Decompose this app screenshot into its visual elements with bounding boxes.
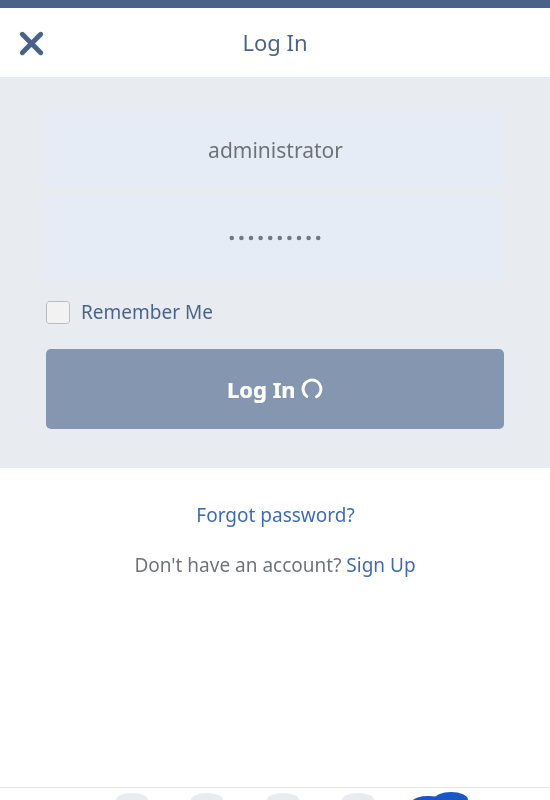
button[interactable] (46, 195, 504, 281)
staticText: Don't have an account? Sign Up (134, 552, 416, 578)
staticText: Remember Me (81, 299, 213, 325)
button[interactable]: Close (10, 22, 52, 64)
button[interactable]: administrator (46, 112, 504, 188)
button[interactable]: Remember Me (46, 295, 213, 329)
staticText: Log In (227, 374, 296, 404)
staticText: administrator (208, 136, 343, 165)
button[interactable]: Don't have an account? Sign Up (122, 548, 428, 582)
button[interactable]: Forgot password? (184, 498, 367, 532)
button[interactable]: Log In (46, 349, 504, 429)
staticText: Forgot password? (196, 502, 355, 528)
staticText: Log In (242, 27, 308, 57)
